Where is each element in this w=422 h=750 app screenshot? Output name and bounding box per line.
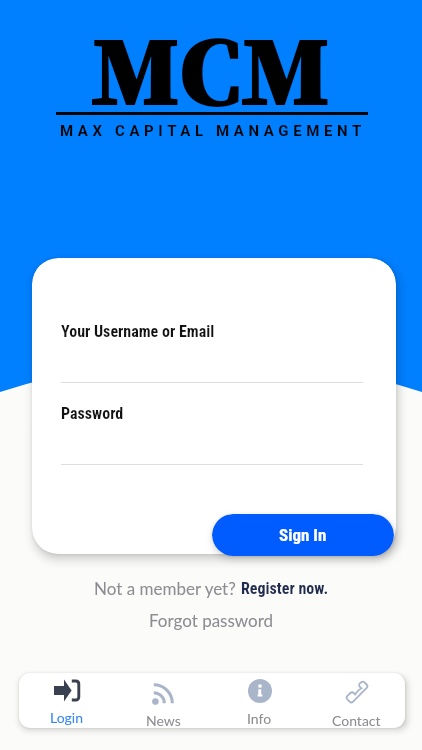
button[interactable]: Sign In [212, 514, 394, 556]
other: Login [54, 679, 80, 702]
button[interactable]: Forgot password [149, 610, 274, 630]
button[interactable]: Login [19, 673, 115, 728]
button[interactable]: Info [211, 673, 308, 728]
other: Contact [344, 679, 370, 705]
button[interactable]: Register now. [241, 579, 329, 598]
staticText: Your Username or Email [61, 322, 215, 341]
staticText: Contact [332, 712, 381, 728]
staticText: Login [50, 709, 84, 726]
button[interactable]: News [115, 673, 211, 728]
staticText: Info [247, 710, 272, 727]
staticText: Password [61, 404, 124, 423]
staticText: News [146, 712, 181, 728]
staticText: Not a member yet? [94, 578, 241, 598]
other: Info [248, 679, 272, 703]
button[interactable]: Contact [308, 673, 405, 728]
staticText: MAX CAPITAL MANAGEMENT [60, 122, 366, 140]
staticText: MCM [91, 1, 331, 138]
staticText: Sign In [279, 525, 327, 545]
staticText: Register now. [241, 579, 329, 598]
staticText: Forgot password [149, 610, 274, 630]
other: News [152, 679, 175, 705]
